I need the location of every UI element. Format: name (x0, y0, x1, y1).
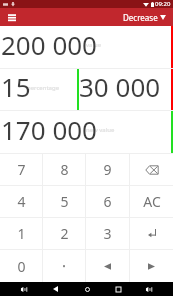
staticText: 09:20 (155, 0, 171, 8)
button[interactable]: 8 (43, 154, 85, 185)
button[interactable]: Move cursor right (130, 250, 173, 282)
button[interactable]: 7 (0, 154, 42, 185)
staticText: AC (143, 192, 161, 211)
button[interactable]: 6 (86, 186, 129, 217)
button[interactable]: Recent apps (111, 282, 125, 296)
button[interactable] (43, 250, 85, 282)
staticText: 0 (17, 257, 26, 276)
button[interactable]: Enter (130, 218, 173, 249)
staticText: 170 000 (1, 112, 97, 147)
button[interactable]: Decrease (105, 8, 166, 26)
staticText: Decrease (123, 12, 158, 23)
button[interactable]: Open navigation menu (0, 8, 23, 26)
staticText: 1 (17, 224, 26, 243)
staticText: new value (86, 126, 115, 134)
staticText: 5 (60, 192, 69, 211)
button[interactable]: percentage (0, 69, 77, 110)
button[interactable]: Move cursor left (86, 250, 129, 282)
staticText: 7 (17, 160, 26, 179)
button[interactable]: 0 (0, 250, 42, 282)
button[interactable]: Volume down (17, 282, 31, 296)
staticText: 3 (103, 224, 112, 243)
staticText: 200 000 (1, 27, 97, 62)
staticText: 30 000 (79, 69, 161, 104)
button[interactable]: new value (0, 111, 171, 153)
staticText: percentage (27, 84, 60, 92)
button[interactable]: Volume up (142, 282, 156, 296)
button[interactable]: Back (48, 282, 62, 296)
button[interactable]: 30 000 (79, 69, 171, 110)
staticText: 6 (103, 192, 112, 211)
staticText: 2 (60, 224, 69, 243)
staticText: 4 (17, 192, 26, 211)
staticText: 15 (1, 69, 31, 104)
button[interactable]: 1 (0, 218, 42, 249)
button[interactable]: 4 (0, 186, 42, 217)
button[interactable]: 2 (43, 218, 85, 249)
button[interactable]: AC (130, 186, 173, 217)
button[interactable]: 3 (86, 218, 129, 249)
staticText: 8 (60, 160, 69, 179)
button[interactable]: value (0, 26, 171, 68)
staticText: 9 (103, 160, 112, 179)
button[interactable]: 5 (43, 186, 85, 217)
button[interactable]: Backspace (130, 154, 173, 185)
button[interactable]: 9 (86, 154, 129, 185)
button[interactable]: Home (80, 282, 94, 296)
staticText: value (86, 41, 102, 49)
